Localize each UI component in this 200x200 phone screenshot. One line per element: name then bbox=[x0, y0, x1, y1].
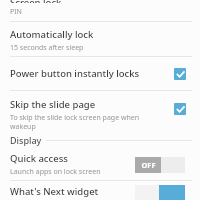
button[interactable]: Quick access toggle, off bbox=[135, 157, 185, 173]
staticText: 15 seconds after sleep bbox=[10, 43, 84, 53]
button[interactable]: What's Next widget bbox=[0, 181, 200, 200]
button[interactable]: Automatically lock bbox=[0, 22, 200, 56]
staticText: Display bbox=[10, 134, 42, 146]
staticText: Screen lock bbox=[10, 0, 62, 3]
staticText: Skip the slide page bbox=[10, 98, 96, 111]
staticText: Quick access bbox=[10, 152, 68, 165]
staticText: To skip the slide lock screen page when … bbox=[10, 113, 140, 131]
staticText: OFF bbox=[141, 160, 156, 170]
staticText: Automatically lock bbox=[10, 28, 94, 41]
staticText: Launch apps on lock screen bbox=[10, 167, 101, 177]
staticText: PIN bbox=[10, 7, 22, 17]
button[interactable]: Screen lock bbox=[0, 0, 200, 21]
button[interactable]: What's Next widget toggle, on bbox=[135, 185, 185, 200]
button[interactable]: Power button instantly locks, checked bbox=[174, 68, 186, 80]
button[interactable]: Power button instantly locks bbox=[0, 57, 200, 90]
button[interactable]: Skip the slide page bbox=[0, 91, 200, 131]
button[interactable]: Skip the slide page, checked bbox=[174, 103, 186, 115]
staticText: What's Next widget bbox=[10, 185, 135, 198]
button[interactable]: Quick access bbox=[0, 149, 200, 180]
staticText: Power button instantly locks bbox=[10, 67, 174, 80]
